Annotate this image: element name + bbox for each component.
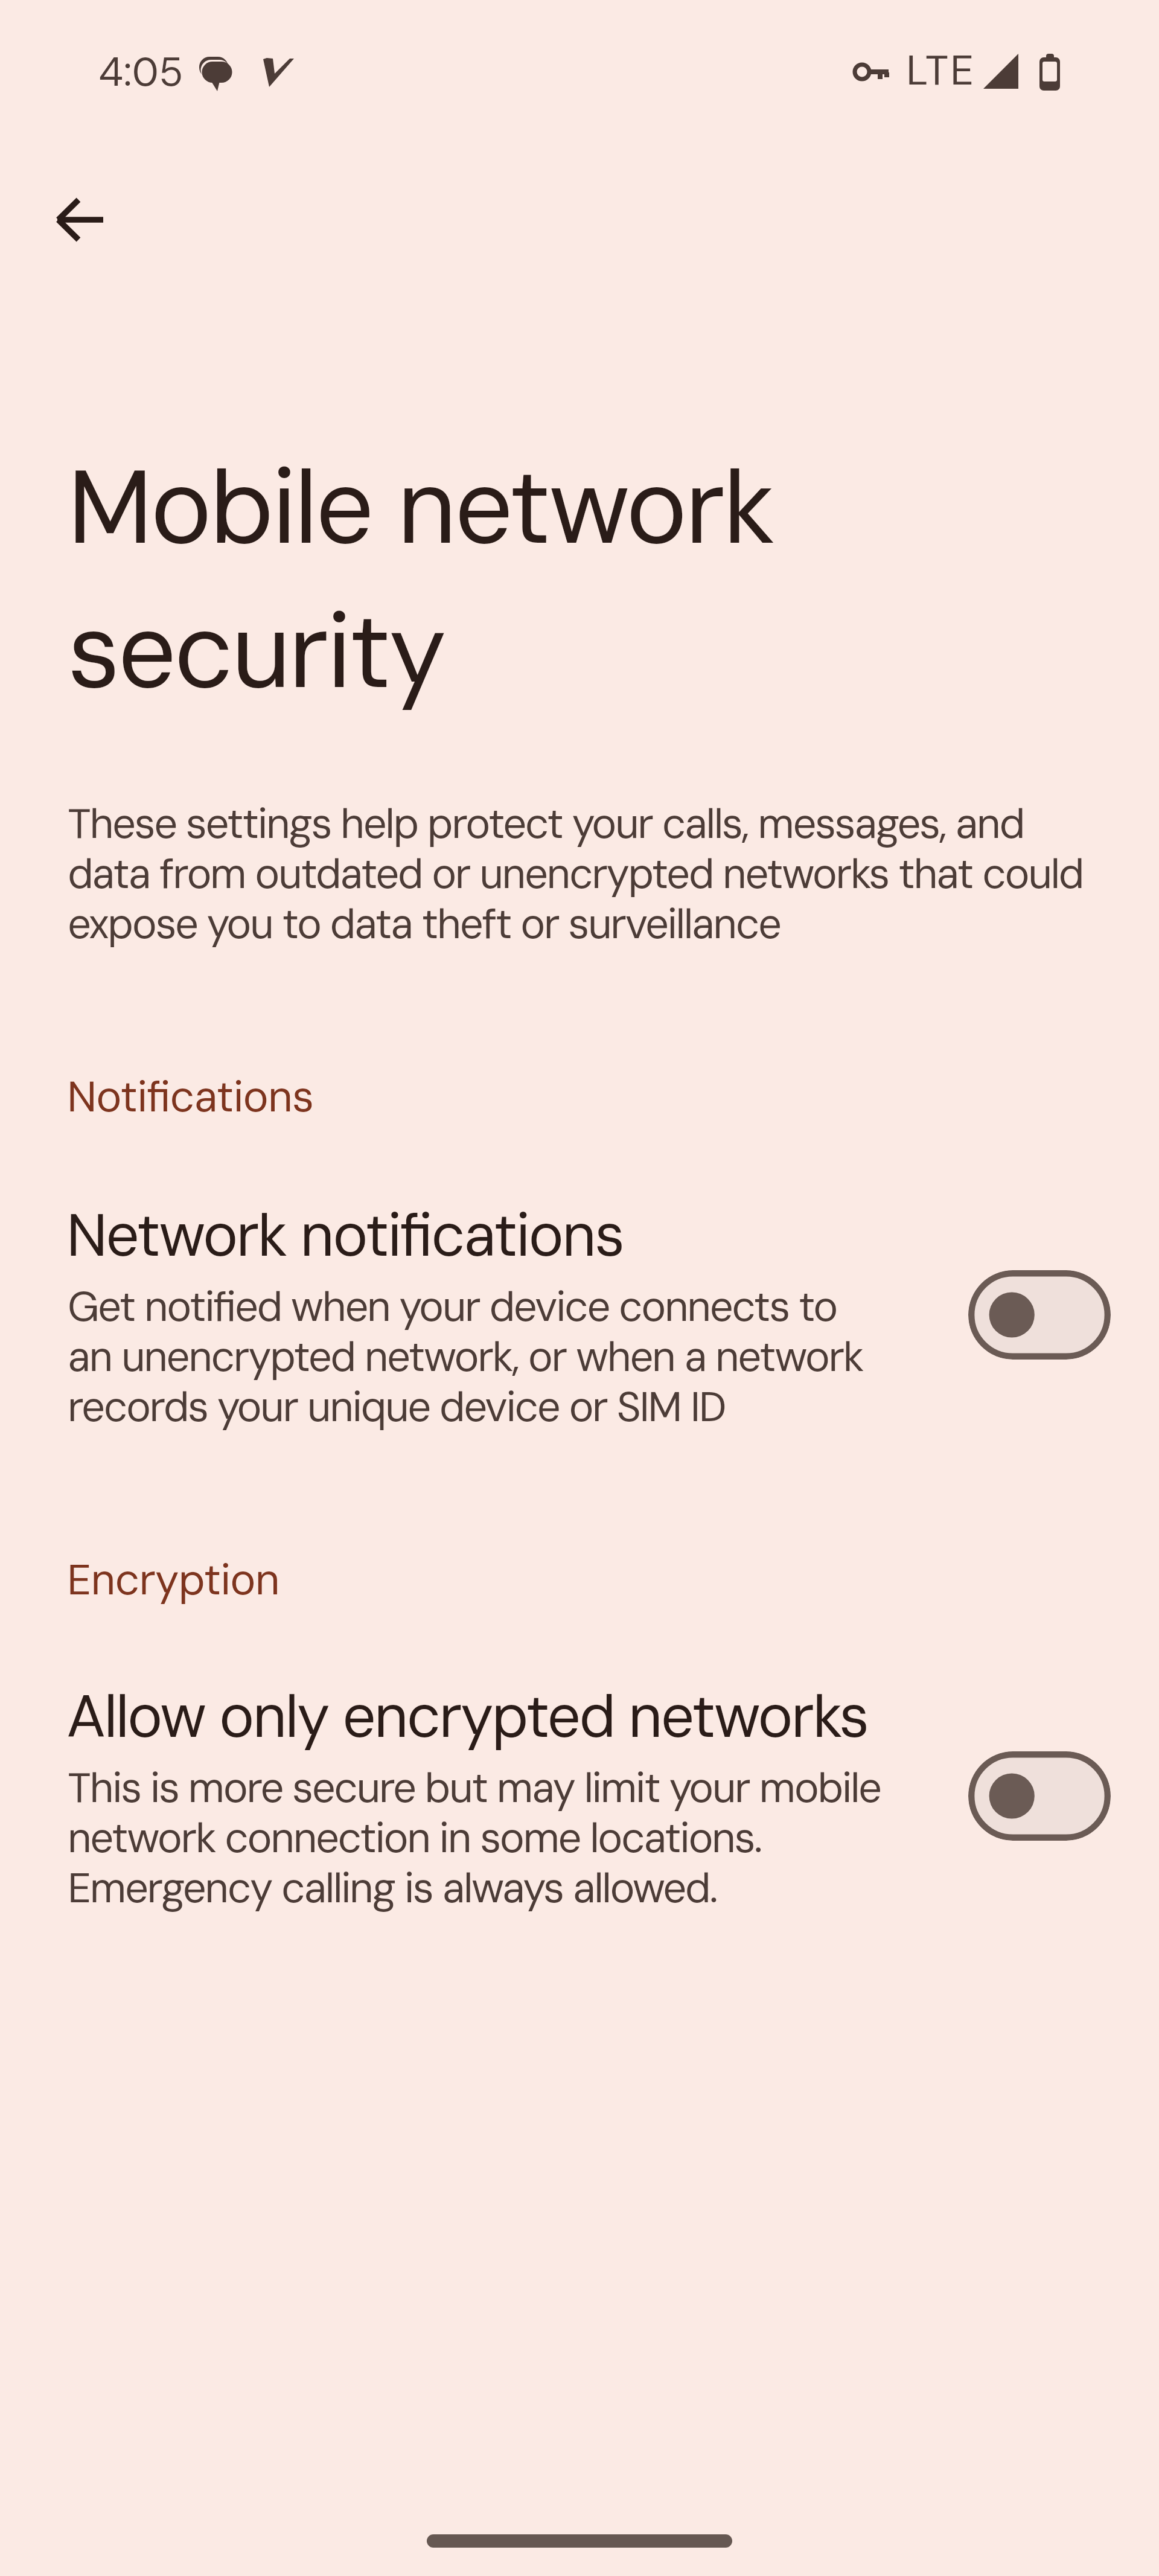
staticText: Encryption — [67, 1552, 279, 1608]
button[interactable]: Network notifications — [0, 1197, 1159, 1499]
staticText: These settings help protect your calls, … — [68, 797, 1094, 951]
button[interactable]: Back — [38, 176, 125, 263]
staticText: Allow only encrypted networks — [66, 1678, 868, 1756]
staticText: Network notifications — [66, 1197, 624, 1274]
button[interactable]: Network notifications — [968, 1270, 1111, 1360]
staticText: 4:05 — [98, 46, 184, 98]
staticText: LTE — [906, 43, 975, 98]
staticText: Mobile network security — [68, 440, 913, 719]
button[interactable]: Allow only encrypted networks — [0, 1678, 1159, 1980]
button[interactable]: Allow only encrypted networks — [968, 1751, 1111, 1841]
staticText: Notifications — [67, 1069, 314, 1125]
staticText: Get notified when your device connects t… — [68, 1280, 886, 1434]
staticText: This is more secure but may limit your m… — [68, 1761, 886, 1916]
